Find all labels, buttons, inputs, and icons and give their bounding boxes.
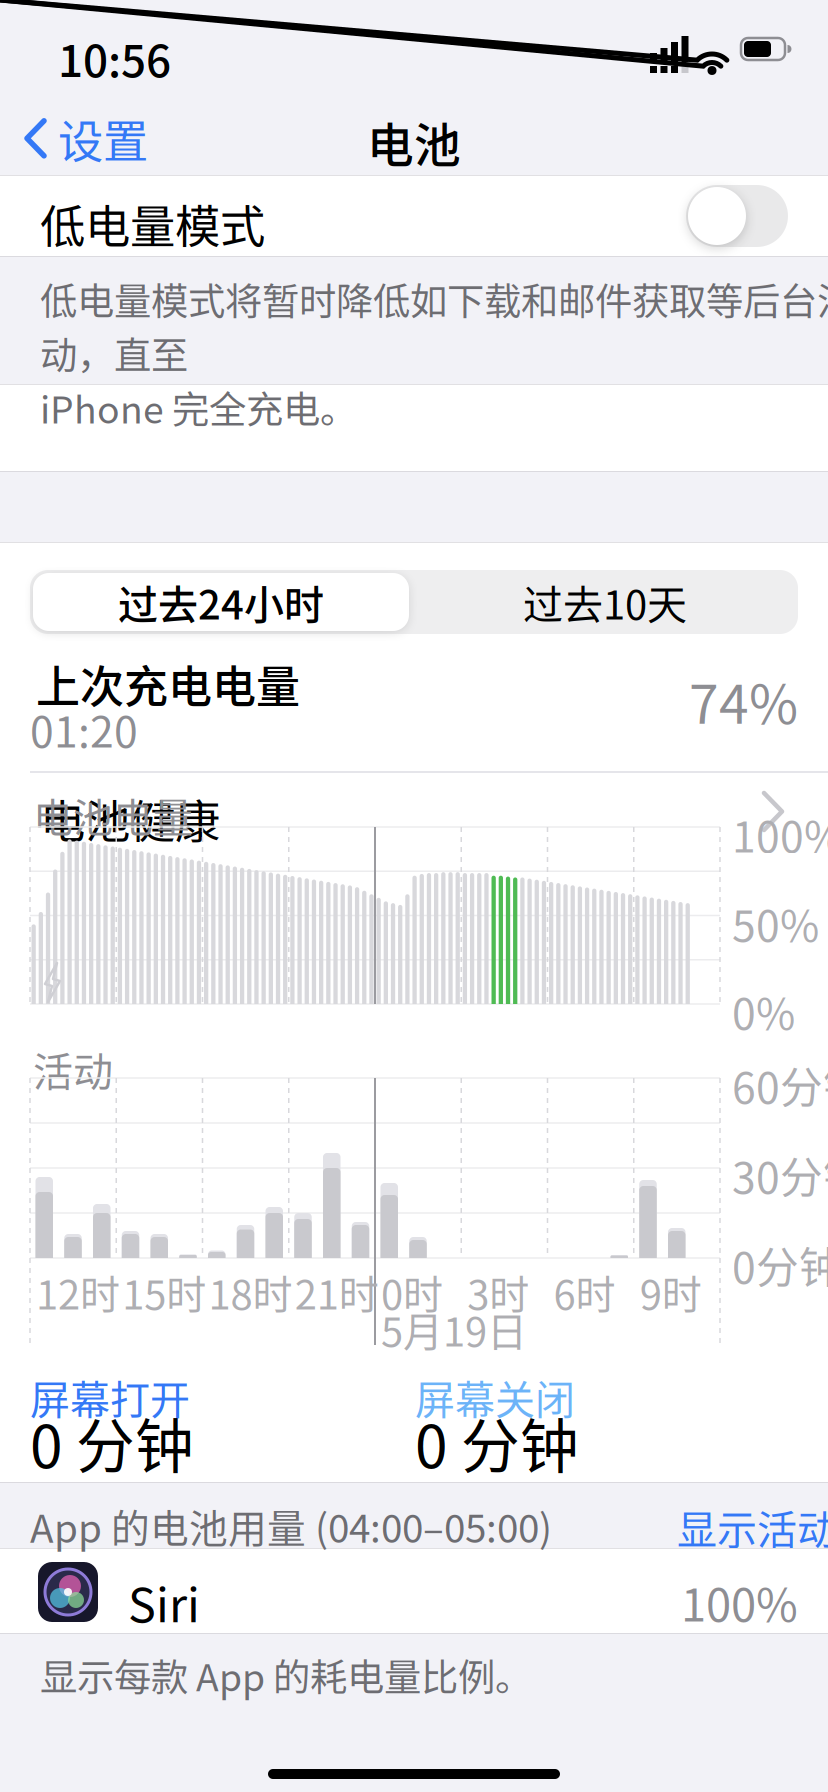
staticText: 74%	[689, 662, 798, 739]
staticText: 电池健康	[40, 786, 220, 852]
staticText: 显示每款 App 的耗电量比例。	[40, 1648, 532, 1702]
button[interactable]: 过去10天	[415, 573, 795, 631]
staticText: 21时	[295, 1263, 379, 1321]
staticText: 0分钟	[732, 1234, 828, 1296]
staticText: 电池	[367, 108, 461, 176]
staticText: 100%	[681, 1569, 798, 1635]
staticText: 显示活动	[677, 1498, 828, 1556]
staticText: 100%	[732, 803, 828, 865]
staticText: 过去10天	[523, 573, 687, 631]
staticText: 0时	[381, 1263, 443, 1321]
staticText: 50%	[732, 892, 819, 954]
button[interactable]: 过去24小时	[33, 573, 409, 631]
staticText: 12时	[36, 1263, 120, 1321]
staticText: 屏幕关闭	[415, 1368, 575, 1426]
staticText: 6时	[553, 1263, 615, 1321]
staticText: 屏幕打开	[30, 1368, 190, 1426]
staticText: Siri	[128, 1568, 200, 1636]
staticText: 15时	[122, 1263, 206, 1321]
staticText: 过去24小时	[118, 573, 324, 631]
staticText: 60分钟	[732, 1054, 828, 1116]
button[interactable]: 电池健康	[0, 384, 828, 471]
staticText: 活动	[33, 1040, 113, 1098]
staticText: 上次充电电量	[36, 652, 300, 716]
staticText: 10:56	[58, 26, 171, 90]
staticText: 0 分钟	[415, 1400, 579, 1485]
staticText: 18时	[208, 1263, 292, 1321]
staticText: 01:20	[30, 698, 138, 760]
button[interactable]: 显示活动	[677, 1498, 828, 1556]
staticText: 电池电量	[33, 786, 193, 844]
staticText: 低电量模式将暂时降低如下载和邮件获取等后台活动，直至 iPhone 完全充电。	[40, 272, 828, 434]
button[interactable]: Siri	[0, 1548, 828, 1633]
staticText: 9时	[640, 1263, 702, 1321]
staticText: 3时	[467, 1263, 529, 1321]
staticText: 0 分钟	[30, 1400, 194, 1485]
staticText: 低电量模式	[40, 191, 265, 257]
staticText: 30分钟	[732, 1144, 828, 1206]
staticText: 5月19日	[381, 1300, 527, 1358]
button[interactable]: 低电量模式	[686, 185, 788, 247]
staticText: App 的电池用量 (04:00–05:00)	[30, 1498, 552, 1554]
button[interactable]: 设置	[22, 106, 148, 172]
staticText: 设置	[58, 106, 148, 172]
staticText: 0%	[732, 980, 795, 1042]
